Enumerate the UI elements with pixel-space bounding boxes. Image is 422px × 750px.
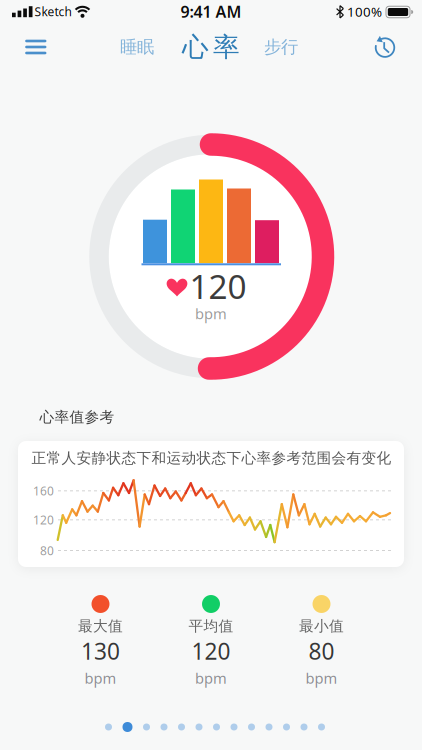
button[interactable]: 心 [176,31,246,63]
staticText: 120 [33,512,54,528]
button[interactable]: 睡眠 [107,32,167,62]
staticText: 步行 [264,36,298,58]
staticText: 100% [347,3,382,20]
staticText: Sketch [34,3,71,19]
staticText: bpm [84,668,116,688]
staticText: 平均值 [188,617,233,635]
staticText: 160 [33,483,54,499]
staticText: 最大值 [78,617,123,635]
button[interactable]: 步行 [251,32,311,62]
staticText: 最小值 [299,617,344,635]
button[interactable] [368,30,402,64]
button[interactable] [18,32,54,62]
staticText: 120 [191,636,230,666]
staticText: 9:41 AM [180,1,241,22]
staticText: 120 [189,264,246,308]
staticText: bpm [195,668,227,688]
staticText: 睡眠 [120,36,154,58]
staticText: 130 [81,636,120,666]
staticText: bpm [305,668,337,688]
staticText: bpm [195,304,227,323]
staticText: 正常人安静状态下和运动状态下心率参考范围会有变化 [31,449,391,467]
staticText: 80 [40,542,54,558]
staticText: 80 [308,636,334,666]
staticText: 心率值参考 [39,408,114,426]
staticText: 率 [213,31,240,63]
staticText: 心 [182,31,209,63]
